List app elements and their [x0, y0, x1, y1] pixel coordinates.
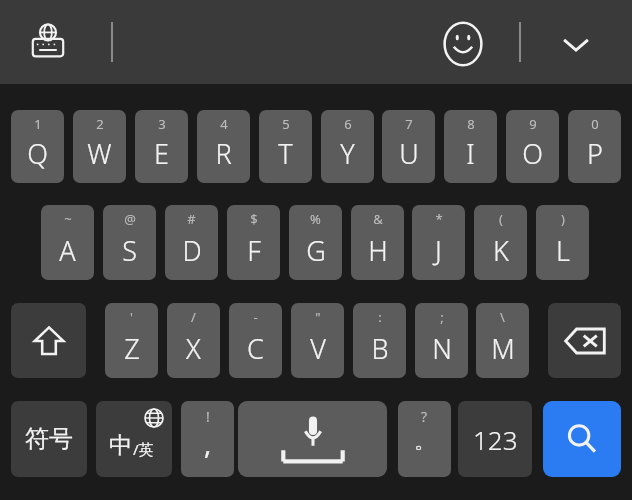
button[interactable]: Space, voice input [238, 401, 387, 477]
staticText: Q [27, 135, 48, 172]
staticText: 5 [282, 115, 290, 133]
staticText: 8 [467, 115, 475, 133]
button[interactable]: 6 [321, 110, 374, 183]
button[interactable]: 7 [382, 110, 435, 183]
staticText: ~ [64, 210, 72, 228]
staticText: 9 [529, 115, 537, 133]
button[interactable]: 3 [135, 110, 188, 183]
staticText: O [522, 135, 543, 172]
button[interactable]: 符号 [11, 401, 87, 477]
button[interactable]: / [167, 303, 220, 378]
button[interactable]: % [289, 205, 342, 280]
button[interactable]: $ [227, 205, 280, 280]
button[interactable]: # [165, 205, 218, 280]
staticText: B [371, 330, 389, 367]
button[interactable]: ; [415, 303, 468, 378]
button[interactable]: 8 [444, 110, 497, 183]
staticText: T [278, 135, 293, 172]
button[interactable]: ~ [41, 205, 94, 280]
staticText: ; [440, 308, 444, 326]
staticText: P [587, 135, 603, 172]
staticText: C [247, 330, 264, 367]
button[interactable]: & [351, 205, 404, 280]
staticText: /英 [133, 439, 154, 459]
staticText: V [310, 330, 326, 367]
staticText: & [373, 210, 383, 228]
button[interactable]: 1 [11, 110, 64, 183]
staticText: , [204, 425, 212, 462]
button[interactable]: \ [476, 303, 529, 378]
staticText: I [466, 135, 475, 172]
staticText: U [399, 135, 419, 172]
button[interactable]: 9 [506, 110, 559, 183]
staticText: X [186, 330, 201, 367]
staticText: % [310, 210, 321, 228]
staticText: ( [499, 210, 503, 228]
button[interactable]: Emoji [438, 19, 488, 69]
staticText: 符号 [25, 424, 73, 454]
staticText: L [556, 232, 570, 269]
staticText: R [215, 135, 232, 172]
staticText: * [435, 210, 443, 228]
button[interactable]: Backspace [548, 303, 621, 378]
staticText: 7 [405, 115, 413, 133]
staticText: ) [561, 210, 565, 228]
staticText: 0 [591, 115, 599, 133]
button[interactable]: @ [103, 205, 156, 280]
staticText: " [315, 308, 321, 326]
staticText: / [191, 308, 196, 326]
staticText: 。 [414, 427, 436, 455]
staticText: N [432, 330, 452, 367]
staticText: J [435, 232, 442, 269]
button[interactable]: Switch input language [22, 18, 74, 66]
staticText: Z [124, 330, 140, 367]
staticText: G [306, 232, 326, 269]
staticText: A [59, 232, 76, 269]
staticText: F [247, 232, 261, 269]
button[interactable]: 123 [458, 401, 532, 477]
staticText: 2 [96, 115, 104, 133]
button[interactable]: " [291, 303, 344, 378]
button[interactable]: Hide keyboard [551, 19, 601, 69]
staticText: # [187, 210, 196, 228]
staticText: 3 [158, 115, 166, 133]
staticText: - [253, 308, 258, 326]
staticText: D [182, 232, 202, 269]
staticText: S [122, 232, 137, 269]
button[interactable]: ? [398, 401, 451, 477]
staticText: ' [130, 308, 133, 326]
staticText: K [493, 232, 509, 269]
staticText: 6 [344, 115, 352, 133]
staticText: @ [124, 210, 136, 228]
staticText: 4 [220, 115, 228, 133]
button[interactable]: ) [536, 205, 589, 280]
staticText: M [491, 330, 515, 367]
button[interactable]: 5 [259, 110, 312, 183]
staticText: \ [500, 308, 505, 326]
button[interactable]: : [353, 303, 406, 378]
button[interactable]: Search [543, 401, 621, 477]
staticText: $ [250, 210, 258, 228]
button[interactable]: 0 [568, 110, 621, 183]
staticText: : [378, 308, 382, 326]
button[interactable]: ' [105, 303, 158, 378]
staticText: W [87, 135, 112, 172]
button[interactable]: 4 [197, 110, 250, 183]
button[interactable]: ( [474, 205, 527, 280]
staticText: ! [206, 407, 210, 426]
staticText: 123 [473, 422, 518, 457]
button[interactable]: Shift [11, 303, 86, 378]
staticText: E [154, 135, 169, 172]
button[interactable]: - [229, 303, 282, 378]
staticText: ? [421, 407, 428, 426]
button[interactable]: * [412, 205, 465, 280]
button[interactable]: ! [181, 401, 234, 477]
staticText: Y [340, 135, 355, 172]
staticText: H [368, 232, 388, 269]
button[interactable]: Chinese English toggle [96, 401, 172, 477]
staticText: 1 [34, 115, 42, 133]
staticText: 中 [109, 431, 132, 460]
button[interactable]: 2 [73, 110, 126, 183]
